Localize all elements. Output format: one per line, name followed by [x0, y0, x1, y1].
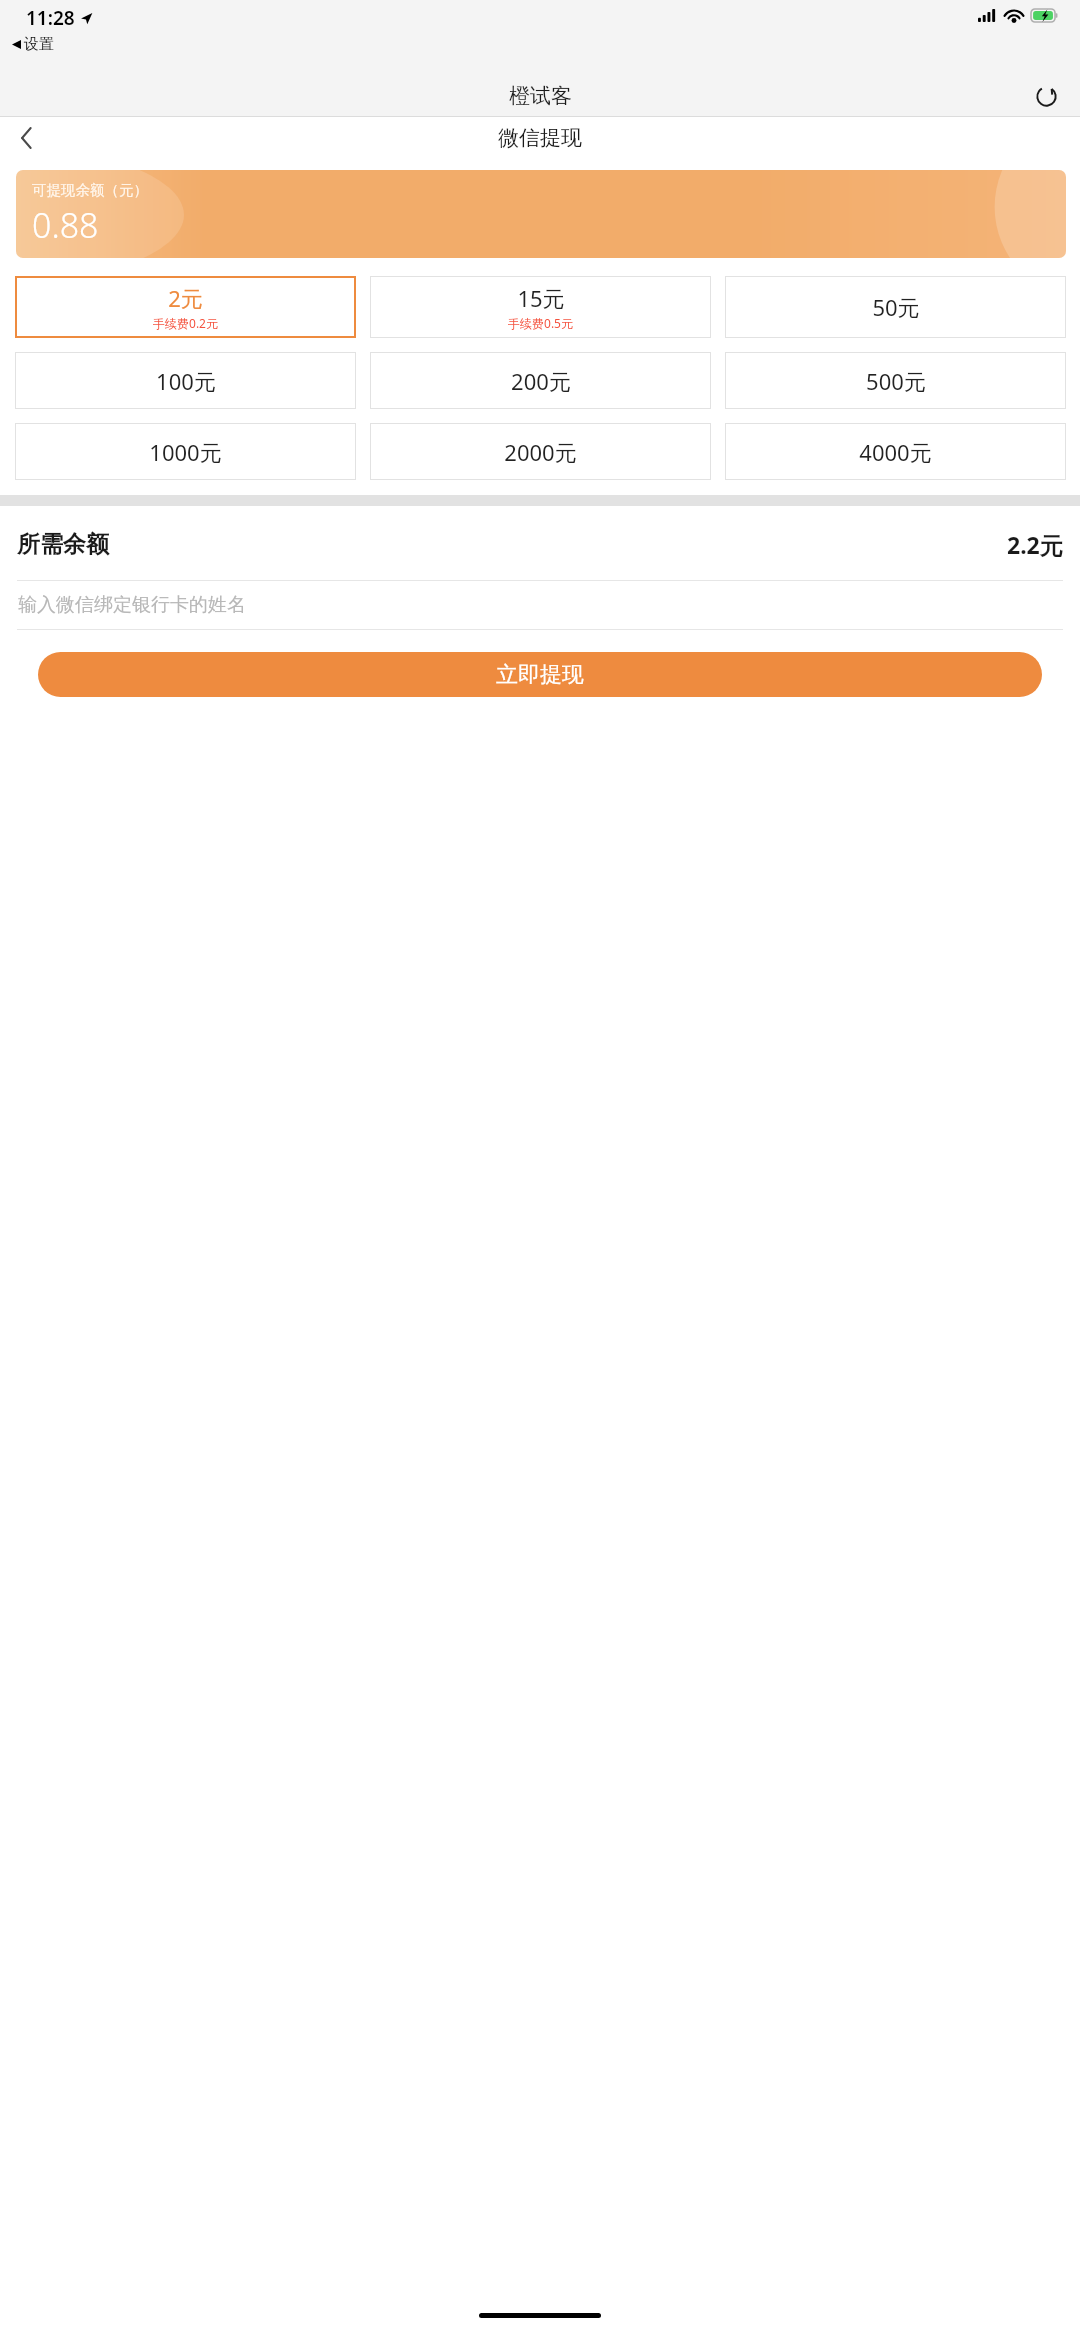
staticText: 输入微信绑定银行卡的姓名 — [18, 593, 246, 617]
staticText: 4000元 — [859, 437, 932, 467]
button[interactable]: 15元 — [370, 276, 711, 338]
button[interactable]: 1000元 — [15, 423, 356, 480]
staticText: 0.88 — [32, 202, 99, 248]
staticText: 100元 — [156, 366, 216, 396]
staticText: 1000元 — [149, 437, 222, 467]
button[interactable]: 2000元 — [370, 423, 711, 480]
staticText: 500元 — [866, 366, 926, 396]
button[interactable]: 4000元 — [725, 423, 1066, 480]
staticText: 所需余额 — [17, 530, 109, 559]
staticText: 50元 — [872, 292, 920, 322]
staticText: 可提现余额（元） — [32, 181, 148, 199]
button[interactable]: 50元 — [725, 276, 1066, 338]
button[interactable]: 2元 — [15, 276, 356, 338]
staticText: 设置 — [24, 35, 54, 54]
staticText: 微信提现 — [498, 125, 582, 151]
button[interactable]: Back — [4, 117, 48, 159]
button[interactable]: 可提现余额（元） — [16, 170, 1066, 258]
button[interactable]: 200元 — [370, 352, 711, 409]
staticText: 11:28 — [26, 5, 75, 31]
staticText: 立即提现 — [496, 661, 584, 689]
button[interactable]: Refresh — [1024, 75, 1068, 117]
button[interactable]: 输入微信绑定银行卡的姓名 — [0, 581, 1080, 629]
button[interactable]: 500元 — [725, 352, 1066, 409]
staticText: 15元 — [517, 283, 565, 313]
button[interactable]: 100元 — [15, 352, 356, 409]
staticText: 橙试客 — [509, 83, 572, 109]
staticText: 2000元 — [504, 437, 577, 467]
staticText: 200元 — [511, 366, 571, 396]
staticText: 手续费0.5元 — [508, 315, 573, 331]
button[interactable]: 设置 — [8, 33, 58, 56]
button[interactable]: 立即提现 — [38, 652, 1042, 697]
staticText: 2.2元 — [1007, 529, 1063, 560]
staticText: 手续费0.2元 — [153, 315, 218, 331]
staticText: 2元 — [168, 283, 203, 313]
